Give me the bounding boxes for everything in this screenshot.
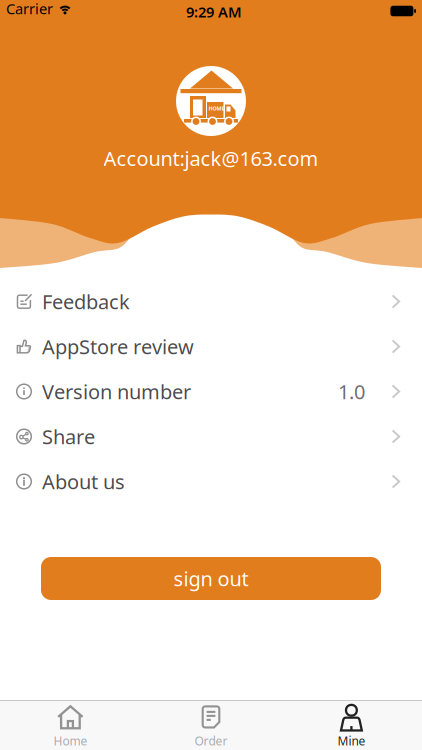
staticText: Home bbox=[53, 733, 87, 749]
staticText: Feedback bbox=[42, 288, 130, 315]
button[interactable]: Home bbox=[0, 701, 141, 750]
button[interactable]: Mine bbox=[281, 701, 422, 750]
button[interactable]: Order bbox=[141, 701, 281, 750]
staticText: 9:29 AM bbox=[186, 2, 242, 21]
staticText: 1.0 bbox=[338, 378, 365, 405]
button[interactable]: Version number bbox=[0, 369, 422, 414]
staticText: HOME bbox=[208, 105, 224, 112]
staticText: sign out bbox=[173, 565, 248, 592]
staticText: Order bbox=[194, 733, 227, 749]
button[interactable]: Share bbox=[0, 414, 422, 459]
staticText: AppStore review bbox=[42, 333, 194, 360]
staticText: Account:jack@163.com bbox=[103, 145, 318, 172]
staticText: About us bbox=[42, 468, 125, 495]
button[interactable]: AppStore review bbox=[0, 324, 422, 369]
staticText: Mine bbox=[338, 733, 366, 749]
button[interactable]: sign out bbox=[41, 557, 381, 600]
button[interactable]: About us bbox=[0, 459, 422, 504]
staticText: Version number bbox=[42, 378, 191, 405]
staticText: Carrier bbox=[6, 0, 53, 18]
staticText: Share bbox=[42, 423, 95, 450]
button[interactable]: Feedback bbox=[0, 279, 422, 324]
